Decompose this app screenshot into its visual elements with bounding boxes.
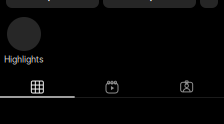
- staticText: Edit profile: [24, 0, 80, 1]
- button[interactable]: Edit profile: [6, 0, 99, 8]
- staticText: Share profile: [116, 0, 182, 1]
- button[interactable]: Highlights: [0, 17, 48, 64]
- staticText: Highlights: [4, 54, 44, 64]
- button[interactable]: Reels: [75, 78, 149, 96]
- button[interactable]: Posts: [0, 78, 75, 96]
- button[interactable]: Share profile: [103, 0, 196, 8]
- button[interactable]: Discover people: [200, 0, 218, 8]
- button[interactable]: Tagged: [149, 78, 224, 96]
